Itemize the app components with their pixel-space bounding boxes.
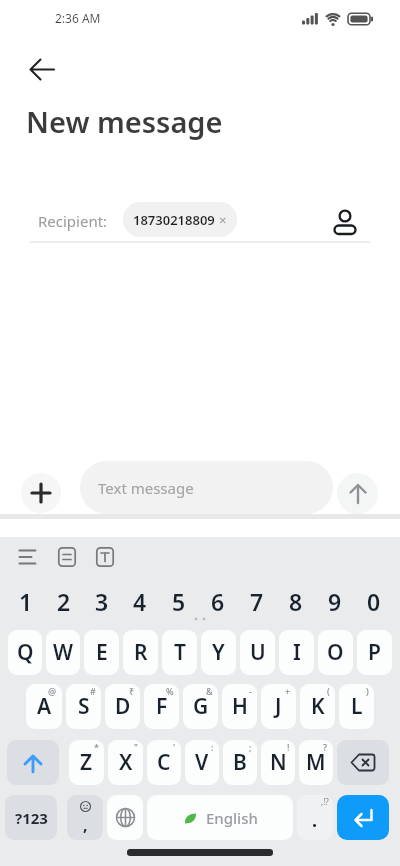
staticText: 0 — [367, 586, 381, 616]
button[interactable]: I — [279, 630, 314, 675]
button[interactable]: N — [261, 740, 295, 785]
button[interactable]: , — [67, 795, 103, 840]
staticText: Z — [80, 748, 93, 777]
button[interactable]: Q — [8, 630, 42, 675]
staticText: , — [83, 814, 88, 836]
button[interactable]: 9 — [315, 586, 354, 616]
staticText: × — [219, 211, 227, 229]
button[interactable] — [11, 541, 43, 573]
staticText: N — [270, 748, 287, 777]
button[interactable] — [51, 541, 83, 573]
button[interactable]: J — [261, 684, 296, 729]
staticText: ' — [173, 741, 176, 753]
staticText: ? — [323, 741, 328, 753]
staticText: ; — [249, 741, 252, 753]
staticText: 5 — [172, 586, 186, 616]
button[interactable]: X — [108, 740, 143, 785]
button[interactable] — [107, 795, 143, 840]
staticText: 4 — [133, 586, 147, 616]
staticText: P — [368, 638, 381, 667]
button[interactable]: V — [185, 740, 219, 785]
staticText: @ — [48, 685, 57, 697]
staticText: H — [232, 692, 248, 721]
button[interactable]: 1 — [7, 586, 45, 616]
button[interactable] — [337, 795, 389, 840]
button[interactable] — [22, 50, 62, 90]
staticText: S — [78, 692, 90, 721]
button[interactable]: G — [183, 684, 218, 729]
button[interactable]: C — [147, 740, 181, 785]
button[interactable]: Y — [201, 630, 236, 675]
button[interactable]: B — [223, 740, 257, 785]
button[interactable]: P — [357, 630, 392, 675]
staticText: ₹ — [129, 685, 135, 697]
button[interactable]: S — [66, 684, 101, 729]
button[interactable]: O — [318, 630, 353, 675]
button[interactable]: 18730218809 — [123, 202, 237, 237]
staticText: English — [206, 808, 258, 828]
staticText: ( — [327, 685, 330, 697]
button[interactable] — [21, 473, 61, 513]
button[interactable]: 2 — [45, 586, 83, 616]
staticText: 8 — [289, 586, 303, 616]
button[interactable]: T — [162, 630, 197, 675]
staticText: 7 — [250, 586, 264, 616]
button[interactable]: 4 — [121, 586, 159, 616]
staticText: + — [285, 685, 291, 697]
staticText: C — [157, 748, 171, 777]
staticText: D — [115, 692, 131, 721]
button[interactable]: M — [299, 740, 333, 785]
staticText: A — [37, 692, 52, 721]
staticText: ) — [366, 685, 369, 697]
staticText: E — [96, 638, 108, 667]
staticText: . — [312, 808, 318, 833]
staticText: B — [233, 748, 247, 777]
staticText: % — [166, 685, 174, 697]
button[interactable] — [337, 473, 378, 514]
button[interactable]: L — [339, 684, 374, 729]
button[interactable] — [7, 740, 59, 785]
staticText: X — [119, 748, 133, 777]
button[interactable]: 6 — [198, 586, 237, 616]
staticText: F — [156, 692, 168, 721]
button[interactable]: 3 — [83, 586, 121, 616]
button[interactable]: 5 — [159, 586, 198, 616]
button[interactable]: R — [123, 630, 158, 675]
staticText: ,!? — [321, 796, 329, 807]
button[interactable]: 0 — [354, 586, 393, 616]
staticText: 18730218809 — [133, 211, 215, 229]
button[interactable]: 7 — [237, 586, 276, 616]
button[interactable]: A — [26, 684, 62, 729]
button[interactable]: F — [144, 684, 179, 729]
staticText: ?123 — [15, 808, 48, 828]
button[interactable]: K — [300, 684, 335, 729]
button[interactable]: H — [222, 684, 257, 729]
staticText: Y — [212, 638, 225, 667]
button[interactable]: English — [147, 795, 293, 840]
staticText: # — [90, 685, 96, 697]
button[interactable]: U — [240, 630, 275, 675]
button[interactable] — [89, 541, 121, 573]
button[interactable]: E — [84, 630, 119, 675]
staticText: 2:36 AM — [55, 10, 101, 26]
button[interactable] — [330, 197, 360, 237]
staticText: & — [206, 685, 213, 697]
staticText: 2 — [57, 586, 71, 616]
staticText: O — [327, 638, 344, 667]
button[interactable]: . — [297, 795, 333, 840]
button[interactable]: D — [105, 684, 140, 729]
staticText: * — [94, 741, 99, 753]
button[interactable]: W — [46, 630, 80, 675]
button[interactable]: Z — [69, 740, 104, 785]
button[interactable]: ?123 — [5, 795, 57, 840]
staticText: L — [351, 692, 363, 721]
staticText: 3 — [95, 586, 109, 616]
staticText: 6 — [211, 586, 225, 616]
staticText: New message — [26, 102, 223, 141]
button[interactable]: 8 — [276, 586, 315, 616]
button[interactable] — [337, 740, 389, 785]
staticText: T — [174, 638, 186, 667]
staticText: U — [250, 638, 266, 667]
staticText: J — [275, 692, 282, 721]
button[interactable]: Text message — [80, 461, 333, 514]
